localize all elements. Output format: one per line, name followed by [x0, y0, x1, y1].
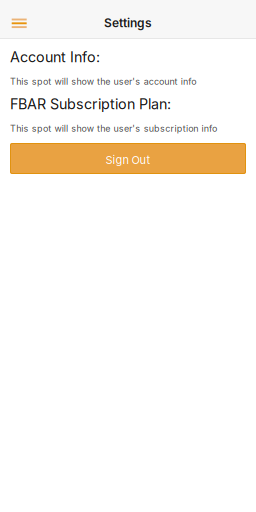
staticText: Account Info: — [10, 48, 100, 66]
staticText: This spot will show the user's account i… — [10, 76, 196, 87]
staticText: FBAR Subscription Plan: — [10, 95, 171, 113]
button[interactable]: Menu — [0, 0, 37, 37]
button[interactable]: Sign Out — [10, 143, 246, 174]
staticText: Settings — [104, 16, 152, 30]
staticText: This spot will show the user's subscript… — [10, 123, 217, 134]
staticText: Sign Out — [105, 153, 150, 167]
